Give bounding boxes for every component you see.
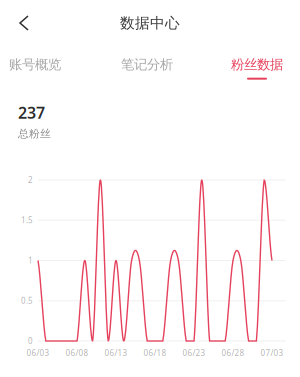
staticText: 0 bbox=[28, 336, 33, 346]
staticText: 数据中心 bbox=[120, 14, 180, 32]
staticText: 06/28 bbox=[221, 348, 244, 358]
staticText: 2 bbox=[28, 175, 33, 185]
staticText: 237 bbox=[18, 102, 45, 123]
staticText: 06/18 bbox=[143, 348, 166, 358]
staticText: 笔记分析 bbox=[121, 56, 173, 73]
button[interactable]: 账号概览 bbox=[3, 51, 67, 85]
staticText: 06/23 bbox=[182, 348, 205, 358]
staticText: 0.5 bbox=[21, 295, 33, 306]
button[interactable]: 笔记分析 bbox=[115, 51, 179, 85]
staticText: 06/08 bbox=[65, 348, 88, 358]
staticText: 总粉丝 bbox=[18, 127, 51, 140]
button[interactable]: Back bbox=[7, 4, 41, 42]
staticText: 1 bbox=[28, 255, 33, 266]
staticText: 07/03 bbox=[260, 348, 283, 358]
button[interactable]: 粉丝数据 bbox=[225, 51, 289, 85]
staticText: 06/13 bbox=[104, 348, 127, 358]
staticText: 粉丝数据 bbox=[231, 56, 283, 73]
staticText: 1.5 bbox=[21, 215, 33, 225]
staticText: 06/03 bbox=[26, 348, 49, 358]
staticText: 账号概览 bbox=[9, 56, 61, 73]
